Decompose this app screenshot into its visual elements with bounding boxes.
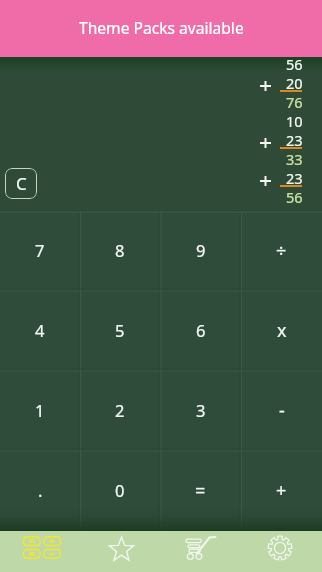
- staticText: x: [277, 318, 287, 343]
- button[interactable]: C: [5, 168, 37, 199]
- button[interactable]: Settings: [241, 531, 322, 572]
- staticText: 3: [196, 399, 206, 421]
- staticText: .: [38, 479, 43, 501]
- button[interactable]: 9: [160, 211, 241, 291]
- staticText: 1: [35, 399, 45, 421]
- button[interactable]: =: [160, 451, 241, 531]
- button[interactable]: 7: [0, 211, 80, 291]
- button[interactable]: +: [241, 451, 322, 531]
- staticText: 10: [286, 111, 303, 130]
- staticText: 23: [286, 168, 303, 187]
- staticText: -: [279, 398, 285, 423]
- staticText: 8: [115, 239, 125, 261]
- staticText: 33: [286, 149, 303, 168]
- staticText: 9: [196, 239, 206, 261]
- staticText: 4: [35, 319, 45, 341]
- button[interactable]: Theme Packs available: [0, 0, 322, 57]
- button[interactable]: ÷: [241, 211, 322, 291]
- staticText: 76: [286, 92, 303, 111]
- staticText: 56: [286, 187, 303, 206]
- button[interactable]: .: [0, 451, 80, 531]
- button[interactable]: -: [241, 371, 322, 451]
- staticText: 5: [115, 319, 125, 341]
- button[interactable]: Favorites: [80, 531, 160, 572]
- staticText: 0: [115, 479, 125, 501]
- staticText: ÷: [276, 238, 287, 263]
- button[interactable]: 8: [80, 211, 160, 291]
- button[interactable]: 6: [160, 291, 241, 371]
- staticText: 7: [35, 239, 45, 261]
- button[interactable]: 4: [0, 291, 80, 371]
- button[interactable]: 3: [160, 371, 241, 451]
- staticText: 6: [196, 319, 206, 341]
- button[interactable]: x: [241, 291, 322, 371]
- staticText: 20: [286, 73, 303, 92]
- button[interactable]: 0: [80, 451, 160, 531]
- staticText: =: [195, 478, 206, 503]
- button[interactable]: 5: [80, 291, 160, 371]
- staticText: C: [16, 172, 27, 195]
- button[interactable]: Shop: [160, 531, 241, 572]
- button[interactable]: 2: [80, 371, 160, 451]
- staticText: 2: [115, 399, 125, 421]
- staticText: Theme Packs available: [79, 17, 244, 38]
- staticText: +: [276, 478, 287, 503]
- button[interactable]: Calculator: [0, 531, 80, 572]
- button[interactable]: 1: [0, 371, 80, 451]
- staticText: 23: [286, 130, 303, 149]
- staticText: 56: [286, 54, 303, 73]
